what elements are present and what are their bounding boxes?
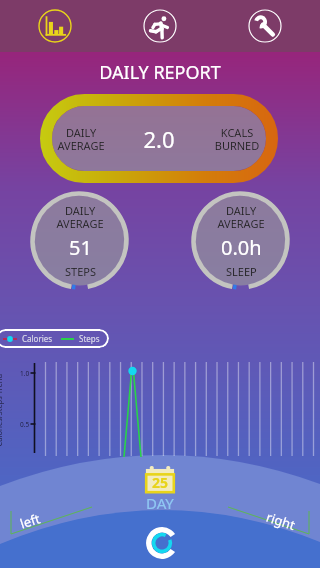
button[interactable]: Report [34, 5, 76, 47]
staticText: STEPS [65, 264, 96, 279]
staticText: 2.0 [122, 124, 196, 154]
staticText: Calories/Steps Trend [0, 373, 3, 446]
staticText: DAILY REPORT [0, 60, 320, 85]
staticText: DAILY AVERAGE [56, 203, 104, 231]
button[interactable]: Home [140, 521, 184, 565]
button[interactable]: Day [145, 466, 175, 513]
staticText: KCALS BURNED [196, 125, 278, 153]
staticText: right [264, 508, 298, 534]
staticText: 25 [152, 473, 169, 492]
staticText: 0.5 [20, 420, 30, 429]
staticText: DAILY AVERAGE [40, 125, 122, 153]
staticText: Steps [79, 333, 100, 344]
staticText: 0.0h [221, 234, 262, 261]
staticText: SLEEP [226, 264, 257, 279]
staticText: left [18, 509, 42, 533]
button[interactable]: DAILY AVERAGE [191, 191, 290, 290]
staticText: Calories [22, 333, 53, 344]
staticText: 1.0 [20, 369, 30, 378]
staticText: DAILY AVERAGE [217, 203, 265, 231]
button[interactable]: DAILY AVERAGE [30, 191, 129, 290]
staticText: DAY [146, 493, 174, 513]
button[interactable]: Settings [244, 5, 286, 47]
button[interactable]: Activity [139, 5, 181, 47]
staticText: 51 [69, 234, 92, 261]
